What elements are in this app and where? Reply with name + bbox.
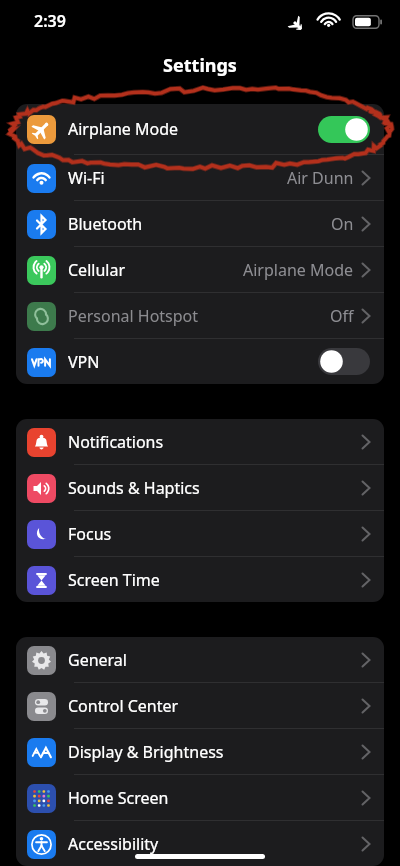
button[interactable]: VPN [16,339,384,384]
button[interactable]: Display & Brightness [16,729,384,774]
staticText: Sounds & Haptics [68,477,200,499]
staticText: Airplane Mode [68,118,179,140]
staticText: Bluetooth [68,213,143,235]
button[interactable]: General [16,637,384,682]
staticText: Wi-Fi [68,167,105,189]
staticText: Airplane Mode [243,259,354,281]
staticText: Settings [163,53,237,78]
staticText: On [331,213,354,235]
staticText: General [68,649,127,671]
button[interactable]: Personal Hotspot [16,293,384,338]
staticText: 2:39 [34,10,66,32]
staticText: Control Center [68,695,179,717]
staticText: Accessibility [68,833,159,855]
button[interactable]: Toggle off [318,348,370,375]
staticText: Screen Time [68,569,160,591]
button[interactable]: Notifications [16,419,384,464]
button[interactable]: Toggle on [318,116,370,143]
staticText: Notifications [68,431,164,453]
button[interactable]: Airplane Mode [16,104,384,154]
staticText: Personal Hotspot [68,305,199,327]
staticText: Cellular [68,259,125,281]
button[interactable]: Bluetooth [16,201,384,246]
staticText: Air Dunn [287,167,354,189]
staticText: VPN [68,351,100,373]
button[interactable]: Sounds & Haptics [16,465,384,510]
button[interactable]: Screen Time [16,557,384,602]
staticText: Home Screen [68,787,169,809]
staticText: Focus [68,523,112,545]
button[interactable]: Wi-Fi [16,155,384,200]
button[interactable]: Accessibility [16,821,384,866]
button[interactable]: Cellular [16,247,384,292]
button[interactable]: Focus [16,511,384,556]
button[interactable]: Control Center [16,683,384,728]
button[interactable]: Home Screen [16,775,384,820]
staticText: Off [330,305,354,327]
staticText: Display & Brightness [68,741,224,763]
